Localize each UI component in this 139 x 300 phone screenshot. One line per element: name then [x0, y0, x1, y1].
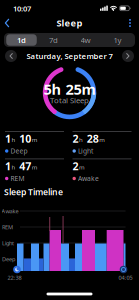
staticText: 4w — [80, 35, 90, 45]
staticText: REM — [10, 174, 24, 183]
staticText: Light — [2, 239, 14, 247]
button[interactable] — [125, 17, 135, 29]
staticText: 1 — [5, 131, 11, 146]
staticText: 5h 25m — [43, 79, 95, 99]
staticText: 28 — [84, 131, 99, 146]
staticText: 2 — [72, 131, 78, 146]
button[interactable]: 1y — [101, 33, 133, 47]
staticText: 04:05 — [118, 274, 132, 281]
staticText: 1d — [17, 35, 26, 45]
staticText: Saturday, September 7 — [26, 51, 112, 61]
button[interactable]: 4w — [69, 33, 101, 47]
staticText: h — [79, 135, 83, 144]
button[interactable] — [5, 50, 17, 62]
staticText: Deep — [2, 255, 15, 263]
staticText: m — [32, 135, 38, 144]
staticText: m — [99, 135, 105, 144]
staticText: m — [79, 163, 85, 171]
staticText: REM — [2, 223, 13, 231]
staticText: Sleep Timeline — [4, 186, 63, 198]
staticText: h — [12, 135, 16, 144]
staticText: Awake — [78, 174, 99, 183]
button[interactable]: 1d — [5, 33, 37, 47]
staticText: h — [12, 163, 16, 171]
staticText: 2 — [72, 159, 78, 173]
staticText: m — [32, 163, 38, 171]
staticText: 10 — [16, 131, 31, 146]
staticText: Light — [78, 146, 93, 156]
button[interactable] — [122, 50, 134, 62]
staticText: Awake — [1, 207, 18, 215]
staticText: 47 — [16, 159, 31, 173]
staticText: Sleep — [56, 17, 82, 29]
staticText: 22:38 — [7, 274, 21, 281]
staticText: Total Sleep — [50, 95, 89, 105]
button[interactable] — [0, 16, 14, 30]
staticText: Deep — [10, 146, 27, 156]
staticText: 1 — [5, 159, 11, 173]
staticText: 10:07 — [13, 3, 31, 14]
staticText: 1y — [113, 35, 121, 45]
staticText: 7d — [49, 35, 58, 45]
button[interactable]: 7d — [37, 33, 69, 47]
